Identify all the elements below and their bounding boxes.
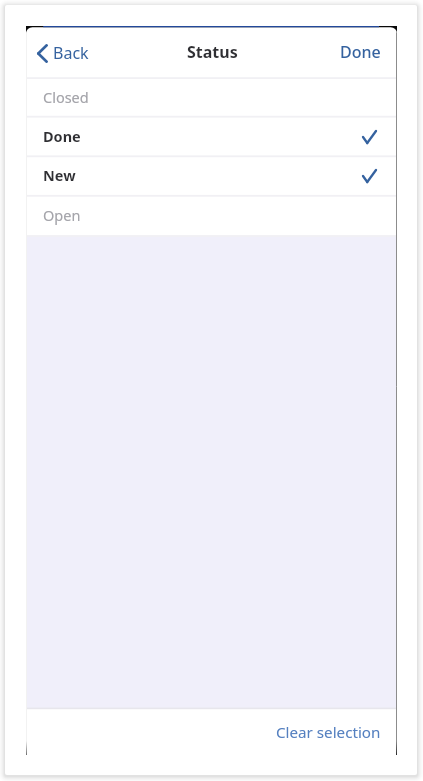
button[interactable]: Done	[26, 117, 397, 156]
other: Selected	[362, 169, 377, 183]
other: Selected	[362, 130, 377, 144]
staticText: Done	[43, 126, 81, 146]
button[interactable]: Done	[324, 33, 397, 71]
staticText: Clear selection	[276, 722, 381, 743]
staticText: New	[43, 165, 76, 185]
staticText: Closed	[43, 87, 89, 107]
other: Back	[37, 44, 48, 63]
button[interactable]: Open	[26, 196, 397, 236]
staticText: Open	[43, 205, 81, 225]
button[interactable]: New	[26, 156, 397, 196]
button[interactable]: Closed	[26, 78, 397, 117]
staticText: Status	[187, 41, 238, 63]
button[interactable]: Clear selection	[260, 714, 397, 751]
button[interactable]: Back	[27, 36, 99, 70]
staticText: Back	[53, 42, 89, 64]
staticText: Done	[340, 41, 381, 63]
